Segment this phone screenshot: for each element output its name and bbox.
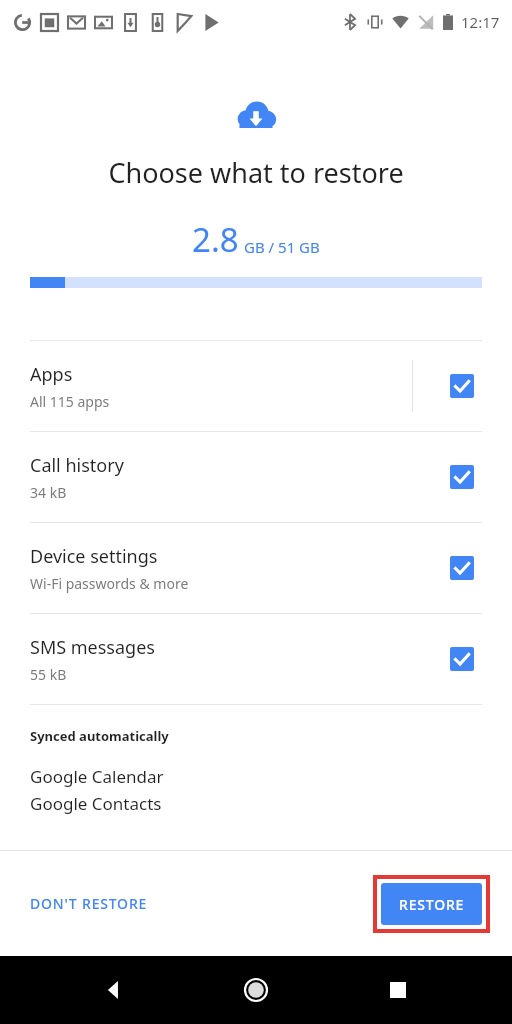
- staticText: Call history: [30, 453, 124, 478]
- staticText: Apps: [30, 362, 73, 387]
- button[interactable]: Recent apps: [376, 968, 420, 1012]
- staticText: Google Calendar: [30, 765, 164, 788]
- button[interactable]: Device settings: [0, 523, 512, 613]
- button[interactable]: SMS messages: [0, 614, 512, 704]
- staticText: SMS messages: [30, 635, 155, 660]
- button[interactable]: Apps checkbox, checked: [450, 374, 474, 398]
- button[interactable]: Apps: [0, 341, 512, 431]
- button[interactable]: Home: [234, 968, 278, 1012]
- button[interactable]: Device settings checkbox, checked: [450, 556, 474, 580]
- staticText: 2.8: [192, 217, 239, 262]
- button[interactable]: SMS messages checkbox, checked: [450, 647, 474, 671]
- button[interactable]: Back: [92, 968, 136, 1012]
- staticText: RESTORE: [399, 895, 465, 914]
- staticText: GB / 51 GB: [244, 237, 320, 257]
- staticText: Synced automatically: [30, 727, 169, 745]
- staticText: 12:17: [461, 12, 500, 32]
- staticText: DON'T RESTORE: [30, 894, 148, 913]
- staticText: Choose what to restore: [0, 154, 512, 191]
- staticText: 55 kB: [30, 665, 67, 684]
- button[interactable]: RESTORE: [381, 883, 482, 925]
- staticText: All 115 apps: [30, 392, 110, 411]
- staticText: Wi-Fi passwords & more: [30, 574, 189, 593]
- staticText: Device settings: [30, 544, 158, 569]
- button[interactable]: Call history: [0, 432, 512, 522]
- button[interactable]: DON'T RESTORE: [18, 884, 160, 923]
- staticText: Google Contacts: [30, 792, 162, 815]
- staticText: 34 kB: [30, 483, 67, 502]
- button[interactable]: Call history checkbox, checked: [450, 465, 474, 489]
